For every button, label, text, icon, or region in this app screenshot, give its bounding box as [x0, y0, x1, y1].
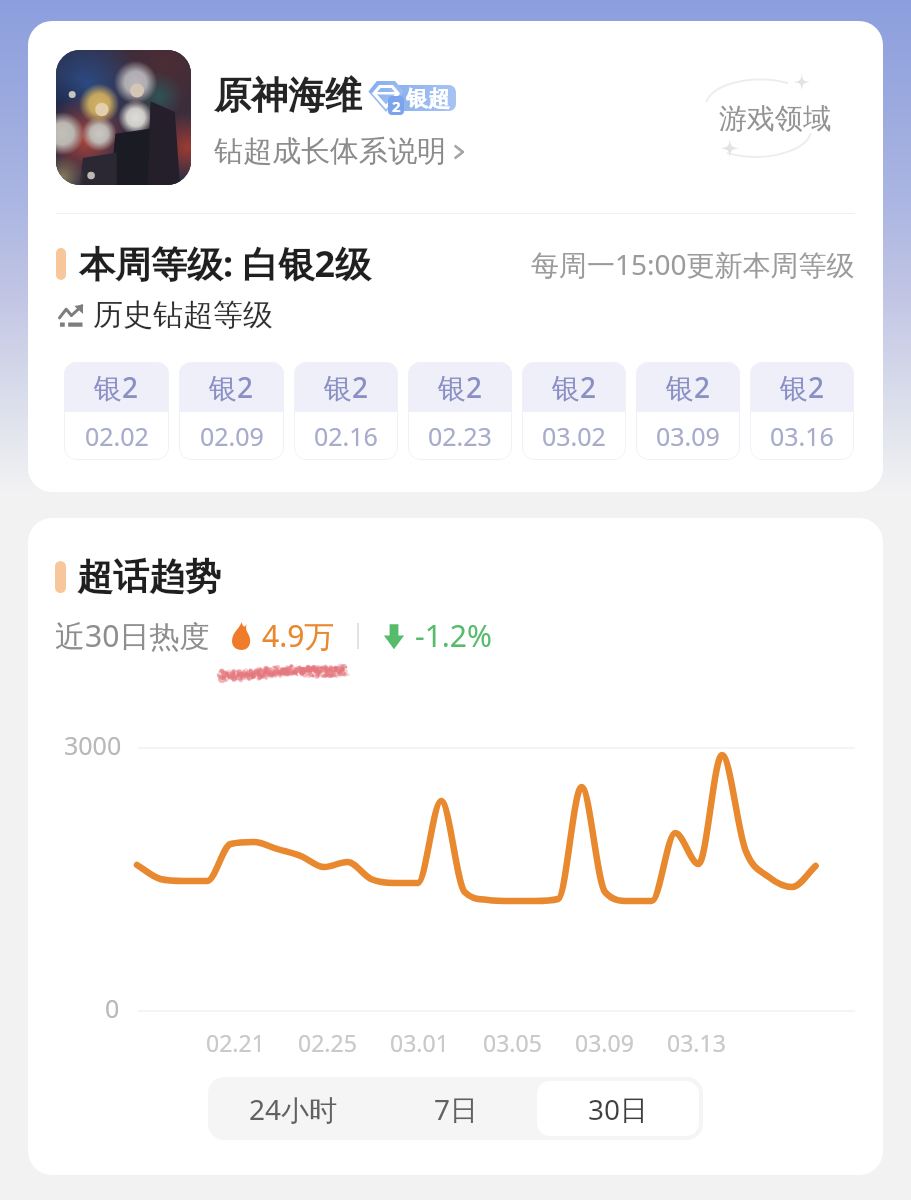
staticText: 7日	[434, 1090, 479, 1128]
button[interactable]: Avatar	[56, 50, 191, 185]
staticText: 02.25	[298, 1027, 357, 1058]
button[interactable]: 银2	[294, 362, 398, 460]
staticText: -1.2%	[415, 615, 492, 656]
staticText: 02.09	[200, 419, 264, 453]
staticText: 03.13	[667, 1027, 726, 1058]
staticText: 4.9万	[262, 615, 335, 656]
button[interactable]: 银2	[64, 362, 169, 460]
staticText: 银超	[406, 85, 450, 111]
button[interactable]: 钻超成长体系说明	[214, 133, 466, 170]
staticText: 银2	[209, 368, 254, 406]
staticText: 02.21	[206, 1027, 265, 1058]
button[interactable]: 银超 badge	[366, 79, 458, 113]
staticText: 03.09	[575, 1027, 634, 1058]
staticText: 原神海维	[214, 72, 362, 119]
staticText: 银2	[780, 368, 825, 406]
button[interactable]: 银2	[408, 362, 512, 460]
staticText: 03.16	[770, 419, 834, 453]
staticText: 钻超成长体系说明	[214, 133, 446, 170]
staticText: 本周等级: 白银2级	[79, 239, 372, 288]
staticText: 游戏领域	[719, 101, 831, 136]
staticText: 银2	[666, 368, 711, 406]
staticText: 02.16	[314, 419, 378, 453]
staticText: 03.02	[542, 419, 606, 453]
staticText: 银2	[324, 368, 369, 406]
staticText: 历史钻超等级	[93, 296, 273, 334]
button[interactable]: 银2	[179, 362, 284, 460]
staticText: 30日	[588, 1090, 649, 1128]
button[interactable]: 7日	[375, 1081, 537, 1136]
staticText: 3000	[64, 728, 122, 762]
staticText: 银2	[94, 368, 139, 406]
staticText: 0	[105, 991, 120, 1025]
staticText: 03.05	[483, 1027, 542, 1058]
staticText: 03.09	[656, 419, 720, 453]
button[interactable]: 30日	[537, 1081, 699, 1136]
staticText: 超话趋势	[77, 554, 221, 599]
staticText: 24小时	[249, 1090, 338, 1128]
staticText: 02.23	[428, 419, 492, 453]
staticText: 每周一15:00更新本周等级	[531, 245, 855, 283]
staticText: 2	[392, 96, 401, 115]
button[interactable]: 银2	[522, 362, 626, 460]
staticText: 03.01	[390, 1027, 449, 1058]
staticText: 近30日热度	[55, 615, 210, 656]
staticText: 02.02	[85, 419, 149, 453]
button[interactable]: 24小时	[212, 1081, 375, 1136]
staticText: 银2	[552, 368, 597, 406]
button[interactable]: 银2	[636, 362, 740, 460]
button[interactable]: 银2	[750, 362, 854, 460]
staticText: 银2	[438, 368, 483, 406]
